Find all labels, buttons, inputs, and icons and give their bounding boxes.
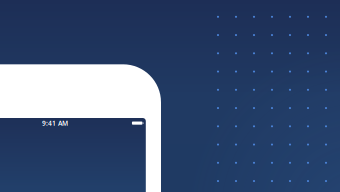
staticText: 9:41 AM <box>42 119 68 128</box>
